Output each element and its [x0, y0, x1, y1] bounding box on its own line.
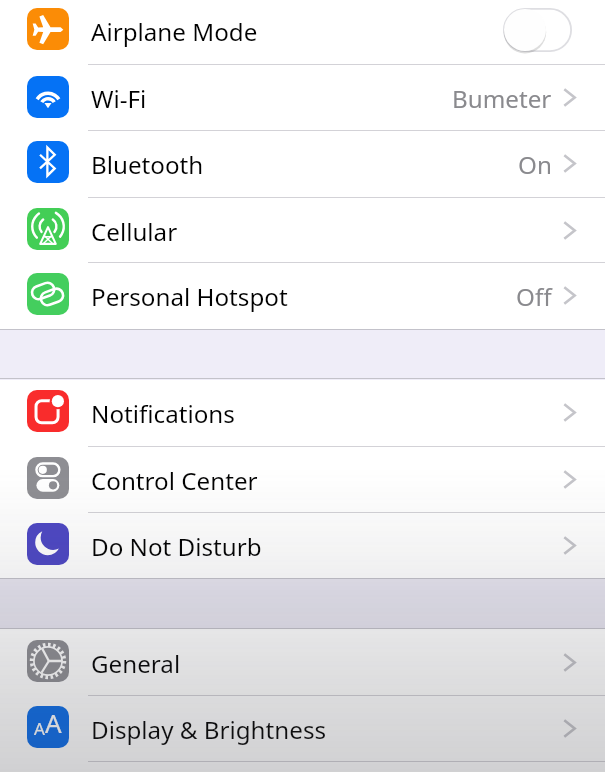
staticText: Bumeter	[452, 82, 552, 115]
staticText: Do Not Disturb	[91, 530, 262, 563]
button[interactable]: General	[0, 629, 605, 695]
button[interactable]: A	[0, 695, 605, 761]
staticText: On	[518, 148, 552, 181]
button[interactable]: Airplane Mode	[0, 0, 605, 63]
staticText: Notifications	[91, 397, 235, 430]
button[interactable]: Wallpaper	[0, 761, 605, 772]
button[interactable]: Airplane Mode toggle, off	[503, 8, 572, 52]
button[interactable]: Do Not Disturb	[0, 512, 605, 578]
staticText: Cellular	[91, 215, 178, 248]
staticText: Bluetooth	[91, 148, 204, 181]
staticText: Control Center	[91, 464, 258, 497]
staticText: General	[91, 647, 181, 680]
staticText: A	[45, 706, 62, 740]
staticText: A	[34, 717, 45, 740]
staticText: Display & Brightness	[91, 713, 327, 746]
staticText: Off	[516, 280, 552, 313]
staticText: Airplane Mode	[91, 15, 258, 48]
button[interactable]: Control Center	[0, 446, 605, 512]
button[interactable]: Notifications	[0, 379, 605, 445]
button[interactable]: Personal Hotspot	[0, 262, 605, 328]
staticText: Wi-Fi	[91, 82, 147, 115]
button[interactable]: Cellular	[0, 197, 605, 263]
button[interactable]: Bluetooth	[0, 130, 605, 196]
button[interactable]: Wi-Fi	[0, 64, 605, 131]
staticText: Personal Hotspot	[91, 280, 288, 313]
